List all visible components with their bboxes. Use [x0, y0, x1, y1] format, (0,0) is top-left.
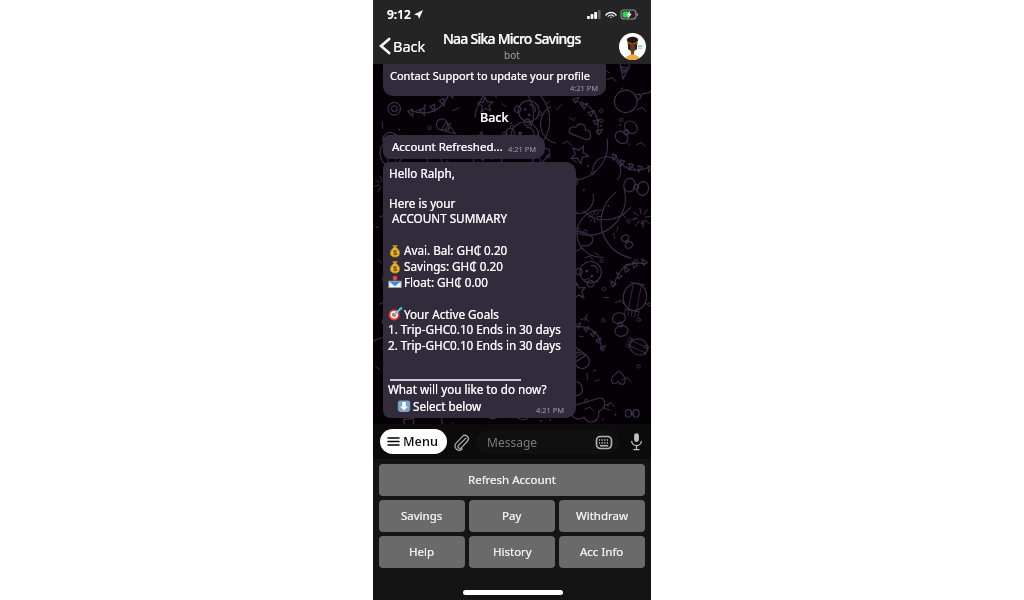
- staticText: Message: [487, 434, 538, 450]
- button[interactable]: Attach file: [453, 433, 470, 450]
- staticText: History: [493, 544, 532, 560]
- staticText: Savings: GH₵ 0.20: [404, 258, 503, 274]
- staticText: Refresh Account: [468, 472, 556, 488]
- button[interactable]: Hello Ralph,: [383, 162, 576, 418]
- staticText: Account Refreshed...: [392, 139, 503, 155]
- staticText: Float: GH₵ 0.00: [404, 274, 488, 290]
- staticText: Back: [393, 36, 426, 56]
- button[interactable]: Acc Info: [559, 536, 645, 568]
- button[interactable]: Menu: [380, 429, 447, 454]
- staticText: 4:21 PM: [536, 405, 565, 415]
- staticText: Help: [409, 544, 435, 560]
- staticText: Acc Info: [580, 544, 624, 560]
- staticText: Withdraw: [576, 508, 629, 524]
- staticText: 4:21 PM: [508, 144, 537, 154]
- button[interactable]: Back: [480, 109, 509, 123]
- staticText: bot: [504, 48, 520, 62]
- staticText: What will you like to do now?: [388, 381, 547, 397]
- staticText: Naa Sika Micro Savings: [443, 29, 581, 48]
- button[interactable]: Savings: [379, 500, 465, 532]
- staticText: Hello Ralph,: [389, 165, 455, 181]
- staticText: Contact Support to update your profile: [390, 68, 590, 83]
- staticText: Avai. Bal: GH₵ 0.20: [404, 242, 508, 258]
- staticText: Here is your: [389, 195, 456, 211]
- staticText: Your Active Goals: [404, 306, 499, 322]
- button[interactable]: Withdraw: [559, 500, 645, 532]
- button[interactable]: Record voice message: [629, 432, 644, 451]
- staticText: Select below: [413, 398, 482, 414]
- staticText: 1. Trip-GHC0.10 Ends in 30 days: [388, 321, 561, 337]
- staticText: Menu: [403, 433, 438, 450]
- button[interactable]: Message: [476, 430, 619, 454]
- staticText: Savings: [401, 508, 443, 524]
- staticText: Pay: [502, 508, 522, 524]
- staticText: ACCOUNT SUMMARY: [389, 210, 508, 226]
- button[interactable]: History: [469, 536, 555, 568]
- button[interactable]: Pay: [469, 500, 555, 532]
- button[interactable]: Back: [379, 34, 427, 58]
- staticText: 9:12: [387, 6, 411, 22]
- button[interactable]: Contact Support to update your profile: [383, 64, 606, 96]
- button[interactable]: Help: [379, 536, 465, 568]
- staticText: 2. Trip-GHC0.10 Ends in 30 days: [388, 337, 561, 353]
- button[interactable]: Refresh Account: [379, 464, 645, 496]
- button[interactable]: Account Refreshed...: [383, 135, 545, 159]
- staticText: Back: [480, 109, 509, 123]
- button[interactable]: Profile photo: [619, 33, 646, 60]
- staticText: 4:21 PM: [570, 83, 599, 93]
